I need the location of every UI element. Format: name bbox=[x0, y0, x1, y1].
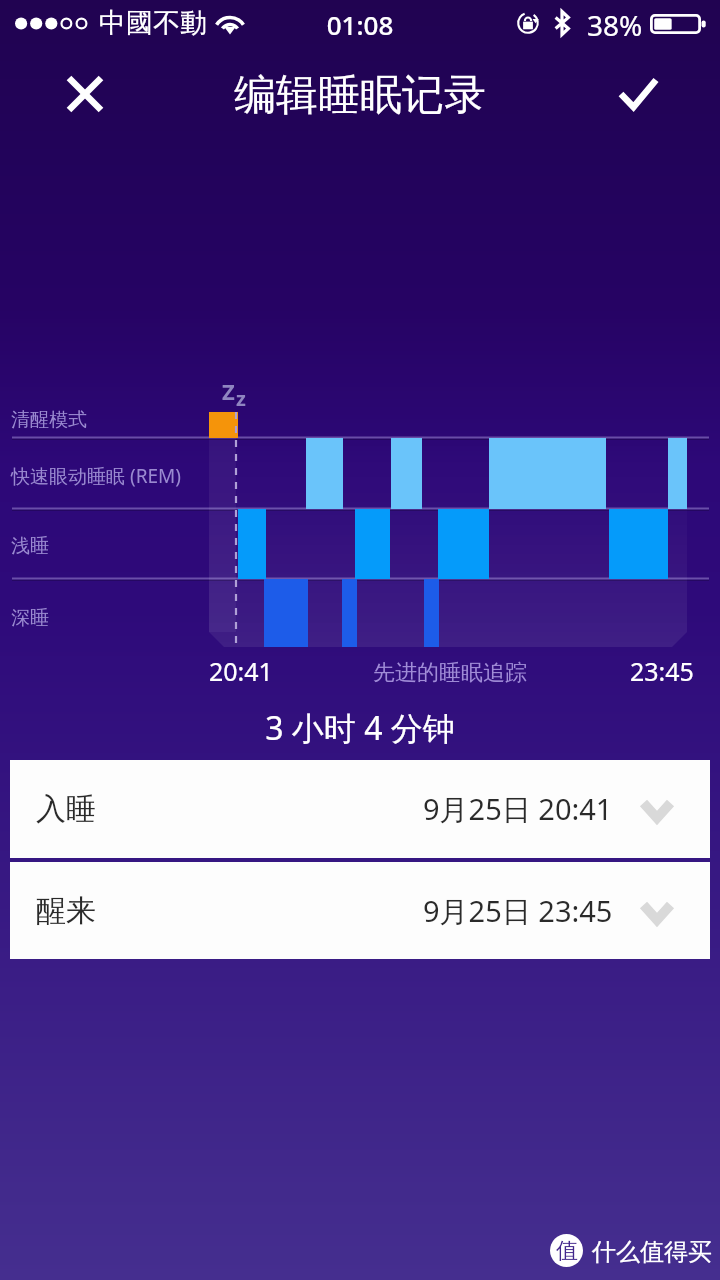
staticText: 01:08 bbox=[0, 7, 720, 42]
staticText: 深睡 bbox=[11, 606, 49, 630]
button[interactable]: Confirm bbox=[602, 56, 674, 128]
staticText: 先进的睡眠追踪 bbox=[209, 659, 691, 687]
staticText: 清醒模式 bbox=[11, 408, 87, 432]
staticText: 什么值得买 bbox=[592, 1237, 712, 1267]
staticText: z bbox=[236, 385, 246, 412]
staticText: 浅睡 bbox=[11, 534, 49, 558]
staticText: 23:45 bbox=[630, 654, 694, 688]
button[interactable]: Close bbox=[49, 58, 121, 130]
staticText: 醒来 bbox=[36, 892, 96, 930]
button[interactable]: 入睡 bbox=[10, 760, 710, 858]
staticText: 9月25日 20:41 bbox=[423, 789, 613, 829]
staticText: 38% bbox=[587, 6, 643, 44]
staticText: Z bbox=[222, 376, 235, 406]
staticText: 入睡 bbox=[36, 790, 96, 828]
button[interactable]: 醒来 bbox=[10, 862, 710, 959]
staticText: 值 bbox=[556, 1237, 578, 1265]
staticText: 9月25日 23:45 bbox=[423, 891, 613, 931]
staticText: 编辑睡眠记录 bbox=[0, 69, 720, 122]
staticText: 3 小时 4 分钟 bbox=[0, 706, 720, 750]
staticText: 20:41 bbox=[209, 654, 273, 688]
staticText: 中國不動 bbox=[99, 6, 207, 40]
staticText: 快速眼动睡眠 (REM) bbox=[11, 463, 181, 489]
